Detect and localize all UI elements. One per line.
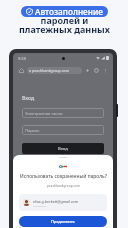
staticText: Использовать сохраненный пароль?	[20, 173, 107, 180]
staticText: Вход	[22, 95, 35, 102]
button[interactable]: More options	[103, 68, 108, 73]
button[interactable]: New tab	[85, 68, 90, 73]
staticText: elisa.g.beckett@gmail.com	[33, 199, 79, 204]
staticText: паролей и платежных данных	[19, 14, 110, 36]
staticText: 9:30	[18, 56, 26, 61]
button[interactable]: Электронная почта	[22, 108, 104, 118]
button[interactable]: Вход	[22, 143, 104, 154]
button[interactable]: Home	[19, 68, 24, 73]
staticText: Вход	[58, 146, 68, 152]
button[interactable]: elisa.g.beckett@gmail.com	[19, 194, 107, 211]
button[interactable]: peachbankgroup.com	[27, 67, 82, 74]
button[interactable]: Tabs	[94, 68, 99, 73]
button[interactable]: Автозаполнение	[21, 6, 108, 17]
staticText: peachbankgroup.com	[47, 184, 80, 188]
staticText: Пароль	[25, 128, 40, 133]
button[interactable]: Пароль	[22, 125, 104, 135]
staticText: Автозаполнение	[35, 6, 103, 17]
staticText: Электронная почта	[25, 111, 63, 116]
staticText: Продолжить	[51, 219, 75, 224]
button[interactable]: Продолжить	[19, 216, 107, 227]
staticText: peachbankgroup.com	[32, 68, 70, 73]
